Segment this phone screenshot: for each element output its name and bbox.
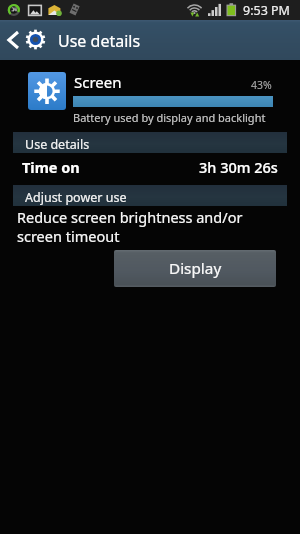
staticText: Reduce screen brightness and/or screen t…: [17, 207, 243, 247]
staticText: Adjust power use: [25, 189, 127, 206]
staticText: 3h 30m 26s: [199, 157, 278, 177]
button[interactable]: Navigate up: [0, 20, 50, 60]
staticText: Use details: [25, 136, 90, 153]
staticText: 43%: [251, 78, 272, 92]
button[interactable]: Display: [114, 250, 276, 287]
staticText: Display: [169, 258, 222, 279]
staticText: Battery used by display and backlight: [73, 110, 266, 125]
staticText: Time on: [22, 157, 80, 177]
staticText: Use details: [58, 30, 141, 52]
staticText: Screen: [74, 72, 122, 92]
staticText: 9:53 PM: [243, 2, 290, 19]
